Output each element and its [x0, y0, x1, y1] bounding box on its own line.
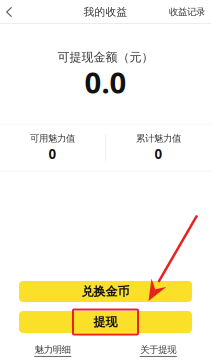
staticText: 0: [154, 145, 162, 163]
staticText: 我的收益: [83, 5, 127, 18]
staticText: 兑换金币: [81, 284, 129, 299]
staticText: 累计魅力值: [136, 133, 181, 144]
staticText: 0: [48, 145, 56, 163]
button[interactable]: 兑换金币: [19, 281, 192, 302]
button[interactable]: 魅力明细: [0, 344, 105, 357]
button[interactable]: Back: [0, 1, 26, 23]
button[interactable]: 提现: [19, 311, 192, 333]
button[interactable]: 关于提现: [105, 344, 211, 357]
staticText: 收益记录: [169, 6, 205, 18]
staticText: 提现: [93, 315, 117, 329]
staticText: 关于提现: [140, 344, 176, 355]
staticText: 可提现金额（元）: [57, 50, 153, 65]
staticText: 可用魅力值: [30, 133, 75, 144]
button[interactable]: 收益记录: [159, 1, 211, 23]
staticText: 魅力明细: [35, 344, 71, 355]
staticText: 0.0: [84, 63, 126, 102]
